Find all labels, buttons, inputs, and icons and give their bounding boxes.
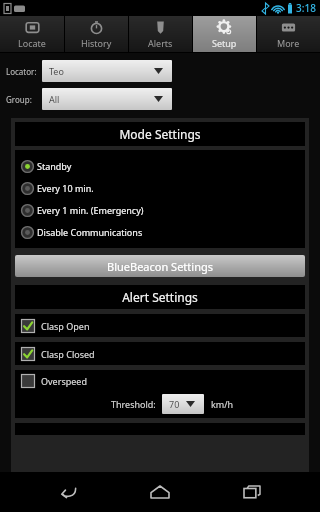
staticText: Locator: [6,66,37,77]
button[interactable]: More [257,16,320,52]
staticText: km/h [211,398,234,410]
staticText: Group: [6,94,32,105]
staticText: More [277,37,300,49]
staticText: 70 [169,398,180,410]
staticText: BlueBeacon Settings [107,259,213,274]
button[interactable]: All [42,88,172,110]
button[interactable]: Every 10 min. [15,177,305,199]
button[interactable]: Home [136,472,184,512]
staticText: Standby [37,160,72,172]
staticText: Teo [49,65,64,77]
staticText: Every 1 min. (Emergency) [37,204,144,216]
button[interactable]: Clasp Open [15,314,305,337]
staticText: Clasp Closed [41,348,95,360]
button[interactable]: History [65,16,128,52]
button[interactable]: Overspeed [15,370,305,392]
staticText: Overspeed [41,375,87,387]
button[interactable]: Recents [228,472,276,512]
button[interactable]: Standby [15,155,305,177]
button[interactable]: Setup [193,16,256,52]
staticText: History [81,37,112,49]
button[interactable]: 70 [162,394,204,414]
staticText: Mode Settings [119,126,201,142]
staticText: Alert Settings [122,289,198,305]
button[interactable]: Teo [42,60,172,82]
button[interactable]: Locate [0,16,64,52]
staticText: Locate [18,37,46,49]
staticText: 3:18 [296,1,316,15]
staticText: All [49,93,60,105]
staticText: Every 10 min. [37,182,94,194]
button[interactable]: BlueBeacon Settings [15,255,305,277]
button[interactable]: Disable Communications [15,221,305,243]
button[interactable]: Clasp Closed [15,342,305,365]
button[interactable]: Every 1 min. (Emergency) [15,199,305,221]
button[interactable]: Alerts [129,16,192,52]
button[interactable]: Back [44,472,92,512]
staticText: Alerts [148,37,173,49]
staticText: Clasp Open [41,320,90,332]
staticText: Disable Communications [37,226,143,238]
staticText: Threshold: [111,398,156,410]
staticText: Setup [212,37,237,49]
